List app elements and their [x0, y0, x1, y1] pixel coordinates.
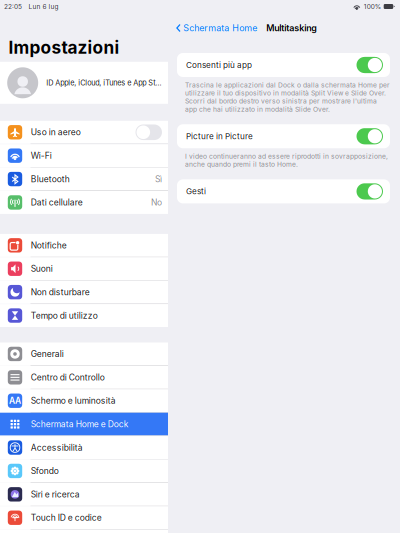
staticText: Schermo e luminosità — [31, 396, 116, 406]
button[interactable]: Touch ID e codice — [0, 506, 168, 529]
staticText: AA — [9, 396, 21, 406]
button[interactable]: Bluetooth — [0, 168, 168, 190]
staticText: Centro di Controllo — [31, 372, 105, 382]
staticText: Accessibilità — [31, 442, 83, 453]
staticText: Sfondo — [31, 466, 59, 476]
staticText: Touch ID e codice — [31, 513, 102, 523]
staticText: No — [151, 197, 162, 208]
button[interactable]: Suoni — [0, 257, 168, 280]
staticText: Multitasking — [266, 23, 317, 33]
button[interactable]: Notifiche — [0, 234, 168, 257]
button[interactable]: Accessibilità — [0, 436, 168, 459]
staticText: Non disturbare — [31, 287, 90, 297]
button[interactable]: Consenti più app — [356, 57, 383, 73]
button[interactable]: Picture in Picture — [356, 128, 383, 144]
staticText: I video continueranno ad essere riprodot… — [185, 152, 388, 168]
staticText: Bluetooth — [31, 174, 70, 184]
button[interactable]: Centro di Controllo — [0, 366, 168, 389]
button[interactable]: Siri e ricerca — [0, 483, 168, 506]
staticText: 22:05 — [4, 2, 22, 10]
button[interactable]: Dati cellulare — [0, 191, 168, 214]
button[interactable]: Tempo di utilizzo — [0, 304, 168, 327]
staticText: Schermata Home — [183, 23, 257, 33]
button[interactable]: ID Apple, iCloud, iTunes e App St… — [0, 62, 168, 104]
staticText: Generali — [31, 349, 64, 359]
button[interactable]: Schermata Home — [168, 13, 259, 43]
staticText: Trascina le applicazioni dal Dock o dall… — [185, 81, 390, 113]
button[interactable]: Generali — [0, 342, 168, 365]
staticText: 100% — [364, 2, 381, 10]
button[interactable]: Schermata Home e Dock — [0, 413, 168, 436]
staticText: Tempo di utilizzo — [31, 310, 98, 321]
button[interactable]: Uso in aereo — [0, 121, 168, 144]
staticText: Siri e ricerca — [31, 489, 80, 499]
staticText: Consenti più app — [186, 60, 252, 70]
button[interactable]: Sfondo — [0, 459, 168, 482]
staticText: Dati cellulare — [31, 197, 83, 208]
staticText: Suoni — [31, 264, 53, 274]
button[interactable]: Gesti — [356, 183, 383, 199]
button[interactable]: Non disturbare — [0, 281, 168, 304]
staticText: Notifiche — [31, 240, 67, 250]
staticText: ID Apple, iCloud, iTunes e App St… — [46, 78, 161, 87]
staticText: Sì — [155, 174, 162, 184]
staticText: Schermata Home e Dock — [31, 419, 129, 429]
staticText: Impostazioni — [8, 37, 119, 58]
button[interactable]: Wi-Fi — [0, 144, 168, 167]
staticText: Picture in Picture — [186, 131, 253, 141]
staticText: Gesti — [186, 186, 206, 196]
staticText: Uso in aereo — [31, 127, 81, 137]
staticText: Wi-Fi — [31, 150, 52, 161]
button[interactable]: AA — [0, 389, 168, 412]
staticText: Lun 6 lug — [28, 2, 58, 10]
